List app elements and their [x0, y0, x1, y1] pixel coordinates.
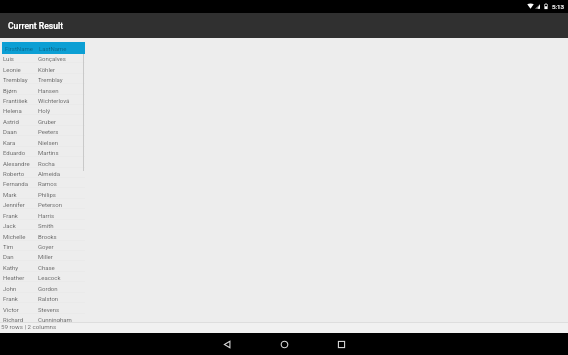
button[interactable]: Astrid — [2, 116, 85, 126]
button[interactable]: Daan — [2, 126, 85, 136]
button[interactable]: Kathy — [2, 262, 85, 272]
button[interactable]: Jack — [2, 220, 85, 230]
staticText: Wichterlová — [38, 97, 70, 104]
staticText: 5:13 — [552, 3, 564, 10]
staticText: Miller — [38, 253, 53, 260]
button[interactable]: Mark — [2, 189, 85, 199]
button[interactable]: Frank — [2, 293, 85, 303]
staticText: Heather — [3, 274, 38, 281]
staticText: 59 rows | 2 columns — [1, 323, 57, 330]
staticText: Martins — [38, 149, 59, 156]
staticText: Tremblay — [3, 76, 38, 83]
staticText: FirstName — [5, 45, 38, 52]
button[interactable]: Recent apps — [313, 333, 370, 355]
staticText: František — [3, 97, 38, 104]
staticText: Michelle — [3, 233, 38, 240]
staticText: Leacock — [38, 274, 61, 281]
staticText: Mark — [3, 191, 38, 198]
staticText: Frank — [3, 212, 38, 219]
staticText: Eduardo — [3, 149, 38, 156]
staticText: Luis — [3, 55, 38, 62]
staticText: Holý — [38, 107, 50, 114]
button[interactable]: Helena — [2, 105, 85, 115]
button[interactable]: Jennifer — [2, 199, 85, 209]
staticText: Kara — [3, 139, 38, 146]
staticText: Kathy — [3, 264, 38, 271]
button[interactable]: Tremblay — [2, 74, 85, 84]
staticText: Gruber — [38, 118, 57, 125]
button[interactable]: Dan — [2, 251, 85, 261]
staticText: Hansen — [38, 87, 59, 94]
button[interactable]: Michelle — [2, 231, 85, 241]
staticText: Current Result — [8, 21, 64, 31]
staticText: Chase — [38, 264, 55, 271]
staticText: Gordon — [38, 285, 58, 292]
staticText: Tim — [3, 243, 38, 250]
button[interactable]: Home — [256, 333, 313, 355]
staticText: Cunningham — [38, 316, 72, 323]
staticText: Harris — [38, 212, 55, 219]
button[interactable]: Back — [199, 333, 256, 355]
staticText: Daan — [3, 128, 38, 135]
staticText: Helena — [3, 107, 38, 114]
button[interactable]: Fernanda — [2, 178, 85, 188]
button[interactable]: Tim — [2, 241, 85, 251]
staticText: Stevens — [38, 306, 60, 313]
staticText: Astrid — [3, 118, 38, 125]
button[interactable]: Roberto — [2, 168, 85, 178]
staticText: Leonie — [3, 66, 38, 73]
staticText: Jack — [3, 222, 38, 229]
staticText: Alexandre — [3, 160, 38, 167]
staticText: Bjørn — [3, 87, 38, 94]
button[interactable]: Luis — [2, 53, 85, 63]
button[interactable]: Heather — [2, 272, 85, 282]
staticText: Dan — [3, 253, 38, 260]
button[interactable]: Victor — [2, 304, 85, 314]
button[interactable]: Richard — [2, 314, 85, 324]
button[interactable]: Eduardo — [2, 147, 85, 157]
staticText: Ralston — [38, 295, 59, 302]
staticText: Victor — [3, 306, 38, 313]
staticText: Peeters — [38, 128, 59, 135]
staticText: Frank — [3, 295, 38, 302]
staticText: Brooks — [38, 233, 57, 240]
button[interactable]: Kara — [2, 137, 85, 147]
staticText: Jennifer — [3, 201, 38, 208]
staticText: Ramos — [38, 180, 57, 187]
staticText: Gonçalves — [38, 55, 66, 62]
button[interactable]: Alexandre — [2, 158, 85, 168]
staticText: Fernanda — [3, 180, 38, 187]
staticText: LastName — [39, 45, 67, 52]
staticText: Richard — [3, 316, 38, 323]
staticText: Philips — [38, 191, 56, 198]
button[interactable]: Leonie — [2, 64, 85, 74]
staticText: Peterson — [38, 201, 62, 208]
staticText: John — [3, 285, 38, 292]
staticText: Almeida — [38, 170, 60, 177]
staticText: Nielsen — [38, 139, 58, 146]
staticText: Rocha — [38, 160, 55, 167]
staticText: Tremblay — [38, 76, 63, 83]
staticText: Roberto — [3, 170, 38, 177]
button[interactable]: Frank — [2, 210, 85, 220]
button[interactable]: František — [2, 95, 85, 105]
button[interactable]: Bjørn — [2, 85, 85, 95]
button[interactable]: John — [2, 283, 85, 293]
staticText: Köhler — [38, 66, 56, 73]
staticText: Smith — [38, 222, 54, 229]
staticText: Goyer — [38, 243, 54, 250]
